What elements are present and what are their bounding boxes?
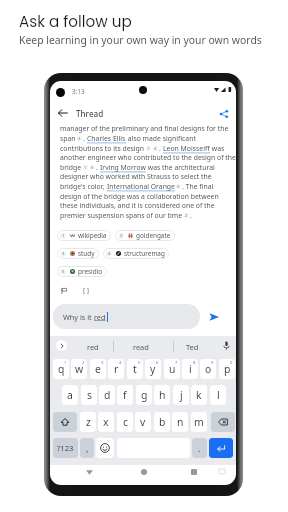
staticText: y — [150, 362, 156, 376]
button[interactable]: j — [173, 385, 189, 405]
button[interactable]: w — [71, 359, 87, 379]
staticText: k — [196, 388, 202, 402]
button[interactable]: r — [108, 359, 124, 379]
button[interactable]: 5 — [90, 165, 95, 170]
button[interactable]: b — [154, 412, 170, 432]
button[interactable]: International Orange — [107, 182, 175, 192]
staticText: was the architectural — [146, 163, 215, 172]
button[interactable]: z — [80, 412, 96, 432]
staticText: 2 — [82, 360, 85, 366]
button[interactable]: s — [81, 385, 97, 405]
staticText: t — [133, 362, 137, 376]
button[interactable]: 5 — [57, 266, 107, 277]
button[interactable]: read — [127, 340, 155, 353]
button[interactable]: ?123 — [53, 438, 78, 458]
staticText: e — [95, 362, 101, 376]
staticText: j — [180, 388, 183, 402]
button[interactable]: v — [135, 412, 151, 432]
staticText: study — [78, 249, 95, 258]
staticText: red — [87, 342, 99, 352]
button[interactable]: More suggestions — [56, 340, 67, 351]
button[interactable]: Shift — [53, 412, 77, 432]
button[interactable]: n — [172, 412, 188, 432]
staticText: m — [194, 415, 204, 429]
staticText: was — [210, 144, 225, 153]
staticText: 2 — [185, 213, 188, 218]
staticText: . The final — [182, 182, 214, 191]
button[interactable]: , — [80, 438, 94, 458]
button[interactable]: Sources — [82, 287, 90, 295]
button[interactable]: Enter — [209, 438, 233, 458]
staticText: v — [140, 415, 146, 429]
button[interactable]: Share — [219, 109, 229, 119]
button[interactable]: a — [62, 385, 78, 405]
button[interactable]: u — [164, 359, 180, 379]
button[interactable]: 2 — [184, 213, 189, 218]
staticText: red — [94, 312, 106, 322]
button[interactable]: q — [53, 359, 69, 379]
staticText: 5 — [138, 360, 141, 366]
button[interactable]: 1 — [146, 146, 151, 151]
button[interactable]: t — [127, 359, 143, 379]
staticText: contributions to its design — [60, 144, 145, 153]
button[interactable]: 1 — [83, 165, 88, 170]
button[interactable]: Home — [141, 469, 147, 475]
button[interactable]: Back — [86, 469, 93, 476]
staticText: . — [83, 134, 87, 143]
staticText: 8 — [193, 360, 196, 366]
staticText: ?123 — [57, 443, 74, 453]
staticText: 9 — [211, 360, 214, 366]
button[interactable]: x — [98, 412, 114, 432]
button[interactable]: d — [99, 385, 115, 405]
staticText: another engineer who contributed to the … — [60, 153, 236, 162]
button[interactable]: i — [182, 359, 198, 379]
button[interactable]: y — [145, 359, 161, 379]
button[interactable]: c — [117, 412, 133, 432]
button[interactable]: 3 — [57, 248, 99, 259]
button[interactable]: Recent apps — [191, 469, 197, 475]
button[interactable]: m — [191, 412, 207, 432]
staticText: 3 — [62, 251, 65, 257]
button[interactable]: Backspace — [211, 412, 235, 432]
staticText: z — [86, 415, 91, 429]
button[interactable]: k — [191, 385, 207, 405]
button[interactable]: Hide keyboard — [219, 469, 225, 474]
button[interactable]: 2 — [115, 230, 175, 241]
button[interactable]: 4 — [153, 146, 158, 151]
button[interactable]: o — [200, 359, 216, 379]
button[interactable]: Ted — [178, 340, 206, 353]
button[interactable]: p — [219, 359, 235, 379]
button[interactable]: 4 — [103, 248, 169, 259]
button[interactable]: f — [117, 385, 133, 405]
button[interactable]: Report — [61, 288, 67, 294]
staticText: b — [159, 415, 166, 429]
staticText: also made significant — [126, 134, 196, 143]
button[interactable]: . — [192, 438, 207, 458]
staticText: i — [189, 362, 192, 376]
button[interactable]: h — [154, 385, 170, 405]
button[interactable]: Irving Morrow — [100, 163, 146, 173]
button[interactable]: Why is it — [53, 304, 200, 329]
staticText: q — [58, 362, 65, 376]
button[interactable]: Emoji — [96, 438, 114, 458]
staticText: 1 — [62, 233, 65, 239]
button[interactable]: l — [210, 385, 226, 405]
staticText: Why is it — [63, 312, 94, 322]
button[interactable]: 5 — [176, 184, 181, 189]
staticText: 5 — [62, 269, 65, 275]
button[interactable]: Back — [58, 108, 68, 118]
staticText: read — [133, 342, 149, 352]
button[interactable]: Voice input — [222, 341, 231, 350]
staticText: w — [75, 362, 84, 376]
staticText: Ted — [186, 342, 199, 352]
button[interactable]: Send — [208, 311, 220, 323]
button[interactable]: Charles Ellis — [87, 134, 126, 144]
staticText: h — [159, 388, 166, 402]
button[interactable]: 1 — [57, 230, 111, 241]
button[interactable]: e — [90, 359, 106, 379]
button[interactable]: red — [79, 340, 107, 353]
button[interactable]: 3 — [77, 136, 82, 141]
button[interactable]: g — [136, 385, 152, 405]
button[interactable]: Leon Moisseiff — [163, 144, 210, 154]
